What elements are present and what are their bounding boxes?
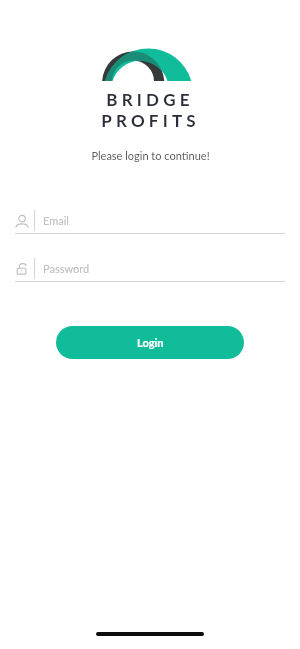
staticText: Password — [43, 262, 90, 275]
other: Password — [15, 262, 29, 276]
button[interactable]: Email — [15, 208, 285, 233]
other: Email — [15, 214, 29, 228]
button[interactable]: Login — [56, 326, 244, 359]
staticText: Please login to continue! — [91, 149, 210, 162]
staticText: Login — [137, 336, 164, 349]
staticText: Email — [43, 214, 69, 227]
staticText: PROFITS — [101, 110, 200, 130]
staticText: BRIDGE — [106, 89, 194, 109]
button[interactable]: Password — [15, 256, 285, 281]
